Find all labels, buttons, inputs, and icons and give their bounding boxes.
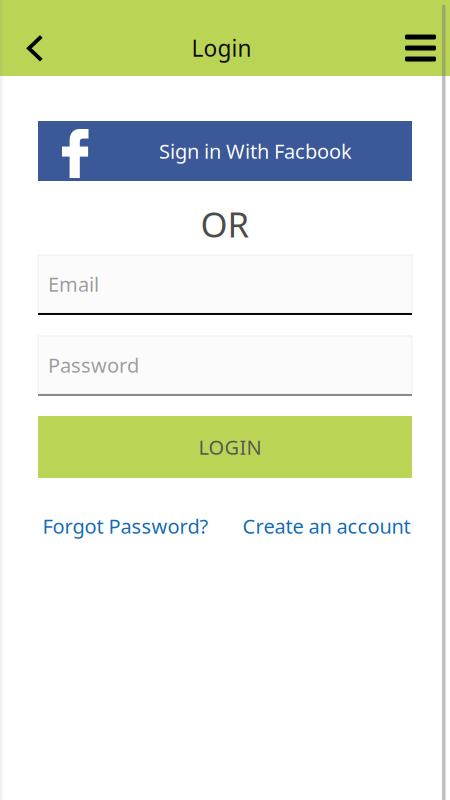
staticText: Login	[191, 33, 251, 63]
button[interactable]: Create an account	[242, 513, 410, 539]
staticText: Sign in With Facbook	[159, 138, 352, 164]
staticText: Password	[48, 352, 139, 378]
button[interactable]: Sign in With Facbook	[38, 121, 412, 181]
button[interactable]: LOGIN	[38, 416, 412, 478]
button[interactable]: Menu	[373, 20, 443, 76]
staticText: Create an account	[242, 513, 410, 539]
staticText: OR	[200, 201, 249, 247]
button[interactable]: Forgot Password?	[42, 513, 208, 539]
staticText: Forgot Password?	[42, 513, 208, 539]
staticText: LOGIN	[198, 434, 261, 460]
button[interactable]: Back	[0, 20, 70, 76]
staticText: Email	[48, 271, 99, 297]
